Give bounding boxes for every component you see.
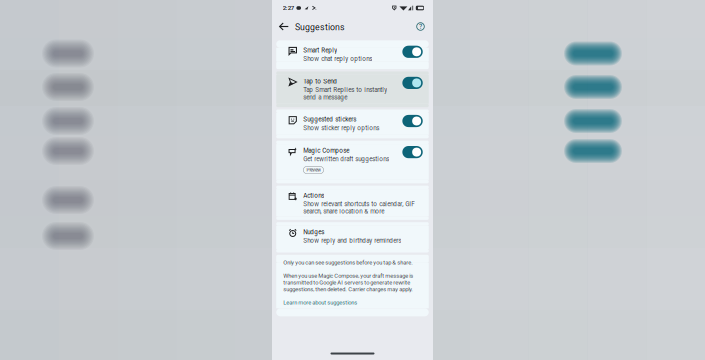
staticText: Suggestions [295,22,345,32]
button[interactable]: Actions [276,186,429,220]
button[interactable]: Tap to Send [276,71,429,107]
button[interactable]: Learn more about suggestions [283,293,357,306]
button[interactable]: Back [275,18,292,35]
staticText: Smart Reply [303,47,337,54]
staticText: Actions [303,192,324,199]
button[interactable]: Nudges [276,222,429,252]
staticText: Show sticker reply options [303,124,379,132]
staticText: Tap Smart Replies to instantly send a me… [303,86,387,101]
staticText: Show reply and birthday reminders [303,237,401,244]
staticText: When you use Magic Compose, your draft m… [283,272,413,293]
button[interactable]: Smart Reply [276,40,429,69]
staticText: Preview [306,167,320,173]
staticText: ? [419,23,422,30]
staticText: 2:27 [283,4,294,12]
button[interactable]: Suggested stickers [276,109,429,138]
staticText: Magic Compose [303,147,349,154]
button[interactable]: Magic Compose [276,141,429,183]
staticText: Show chat reply options [303,55,372,62]
staticText: Tap to Send [303,78,337,85]
staticText: Suggested stickers [303,116,356,123]
button[interactable]: Help [413,19,428,34]
staticText: Nudges [303,228,324,236]
staticText: Only you can see suggestions before you … [283,259,413,266]
staticText: Learn more about suggestions [283,299,357,306]
staticText: Get rewritten draft suggestions [303,155,389,163]
staticText: Show relevant shortcuts to calendar, GIF… [303,200,414,215]
